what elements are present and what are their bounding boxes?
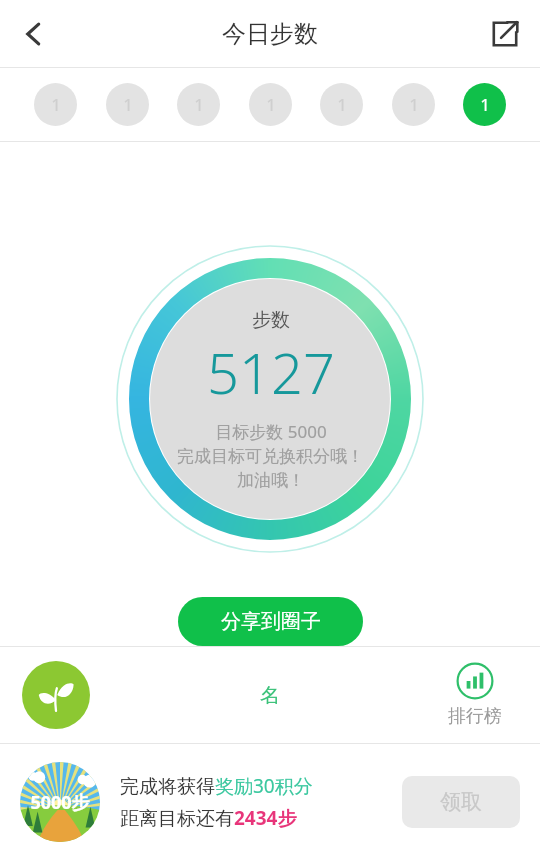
staticText: 目标步数 5000 — [215, 420, 327, 443]
staticText: 5000步 — [30, 790, 90, 815]
staticText: 名 — [260, 683, 280, 708]
staticText: 领取 — [440, 789, 482, 815]
staticText: 1 — [51, 93, 61, 116]
button[interactable]: 1 — [463, 83, 506, 126]
button[interactable]: Share — [478, 7, 532, 61]
staticText: 1 — [409, 93, 419, 116]
button[interactable]: 1 — [392, 83, 435, 126]
staticText: 5127 — [207, 334, 335, 410]
staticText: 1 — [194, 93, 204, 116]
button[interactable]: 步数排名 — [22, 661, 90, 729]
button[interactable]: 1 — [177, 83, 220, 126]
staticText: 步数 — [252, 308, 290, 332]
staticText: 1 — [480, 93, 490, 116]
staticText: 今日步数 — [222, 19, 318, 49]
staticText: 1 — [123, 93, 133, 116]
staticText: 分享到圈子 — [221, 609, 321, 634]
button[interactable]: 领取 — [402, 776, 520, 828]
button[interactable]: 1 — [249, 83, 292, 126]
button[interactable]: 1 — [106, 83, 149, 126]
staticText: 完成将获得奖励30积分 — [120, 773, 313, 799]
staticText: 距离目标还有2434步 — [120, 805, 297, 831]
staticText: 完成目标可兑换积分哦！ — [177, 446, 364, 467]
staticText: 排行榜 — [448, 705, 502, 728]
button[interactable]: Back — [6, 6, 62, 62]
button[interactable]: 排行榜 — [448, 662, 502, 728]
staticText: 1 — [337, 93, 347, 116]
staticText: 1 — [266, 93, 276, 116]
staticText: 加油哦！ — [237, 470, 305, 491]
button[interactable]: 分享到圈子 — [178, 597, 363, 646]
button[interactable]: 1 — [320, 83, 363, 126]
button[interactable]: 1 — [34, 83, 77, 126]
